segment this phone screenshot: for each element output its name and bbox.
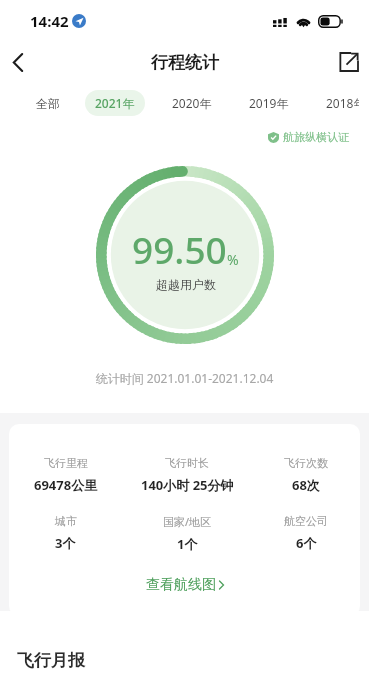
staticText: % — [227, 250, 239, 269]
staticText: 2020年 — [172, 95, 212, 111]
button[interactable]: Share — [331, 44, 367, 80]
staticText: 飞行月报 — [17, 650, 85, 671]
staticText: 城市 — [55, 514, 77, 528]
staticText: 航空公司 — [284, 514, 328, 528]
staticText: 14:42 — [30, 11, 69, 31]
staticText: 99.50 — [132, 224, 227, 274]
staticText: 6个 — [296, 534, 317, 552]
staticText: 飞行里程 — [44, 456, 88, 470]
staticText: 2021年 — [95, 95, 135, 111]
staticText: 飞行次数 — [284, 456, 328, 470]
button[interactable]: 2019年 — [239, 90, 299, 116]
staticText: 2018年 — [326, 95, 359, 111]
staticText: 2019年 — [249, 95, 289, 111]
button[interactable]: 全部 — [26, 91, 70, 116]
button[interactable]: 2020年 — [162, 90, 222, 116]
staticText: 全部 — [36, 96, 60, 111]
staticText: 69478公里 — [34, 476, 98, 494]
staticText: 航旅纵横认证 — [283, 130, 349, 144]
staticText: 查看航线图 — [146, 576, 216, 594]
staticText: 国家/地区 — [163, 514, 212, 529]
button[interactable]: 2018年 — [316, 90, 369, 116]
staticText: 140小时 25分钟 — [141, 476, 234, 494]
staticText: 统计时间 2021.01.01-2021.12.04 — [0, 370, 369, 386]
button[interactable]: 2021年 — [85, 90, 145, 116]
staticText: 3个 — [55, 534, 76, 552]
staticText: 飞行时长 — [165, 456, 209, 470]
staticText: 超越用户数 — [156, 277, 216, 292]
staticText: 1个 — [177, 535, 198, 553]
staticText: 行程统计 — [151, 52, 219, 73]
button[interactable]: 查看航线图 — [9, 576, 360, 594]
button[interactable]: Back — [0, 44, 36, 80]
staticText: 68次 — [292, 476, 320, 494]
